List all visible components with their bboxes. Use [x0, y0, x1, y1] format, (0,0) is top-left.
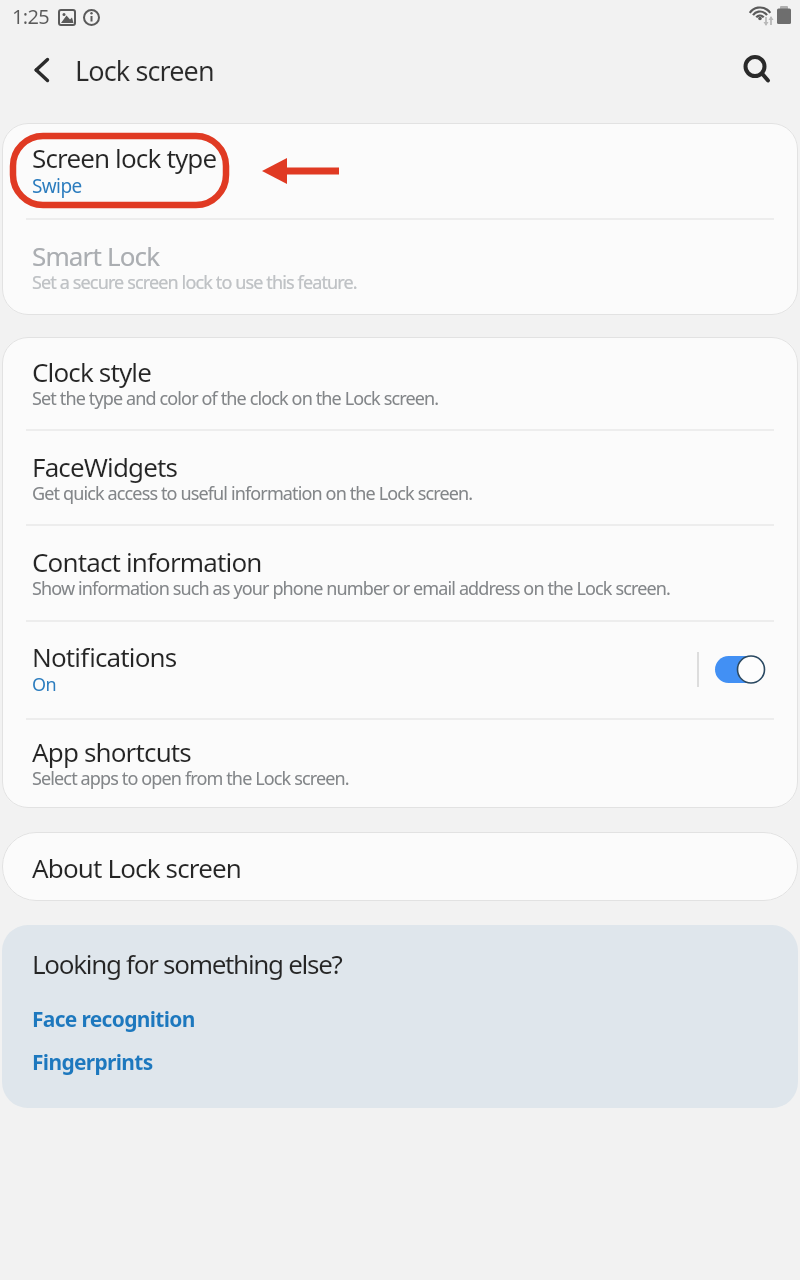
staticText: Looking for something else? [32, 946, 342, 981]
staticText: Show information such as your phone numb… [32, 576, 670, 601]
staticText: Get quick access to useful information o… [32, 481, 473, 506]
staticText: App shortcuts [32, 734, 191, 769]
staticText: 1:25 [12, 3, 50, 30]
staticText: Swipe [32, 173, 82, 199]
staticText: Select apps to open from the Lock screen… [32, 766, 349, 791]
staticText: Smart Lock [32, 238, 160, 273]
staticText: Lock screen [75, 52, 214, 89]
staticText: Set the type and color of the clock on t… [32, 386, 439, 411]
staticText: Fingerprints [32, 1048, 153, 1077]
staticText: FaceWidgets [32, 449, 178, 484]
staticText: Set a secure screen lock to use this fea… [32, 270, 357, 295]
staticText: About Lock screen [32, 850, 241, 885]
staticText: Clock style [32, 354, 152, 389]
staticText: Notifications [32, 639, 177, 674]
staticText: Face recognition [32, 1005, 195, 1034]
staticText: On [32, 672, 56, 697]
staticText: Screen lock type [32, 140, 217, 175]
staticText: Contact information [32, 544, 262, 579]
